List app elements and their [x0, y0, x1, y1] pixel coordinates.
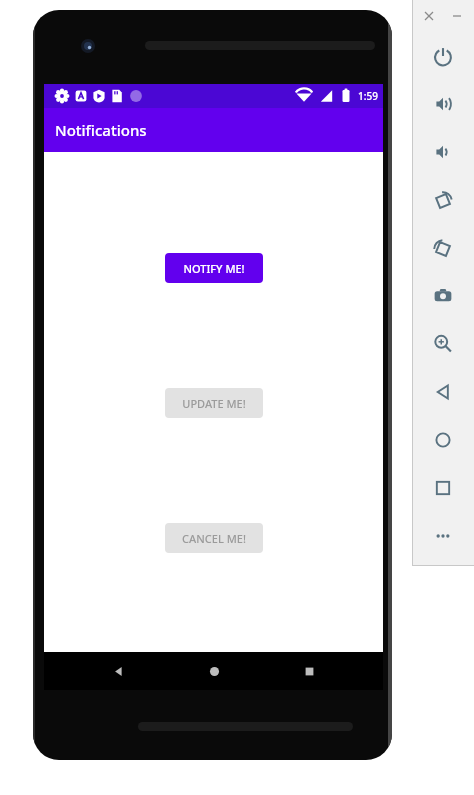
button[interactable]: Minimize	[447, 6, 467, 26]
button[interactable]: Rotate right	[412, 224, 474, 272]
staticText: Notifications	[55, 120, 147, 140]
button[interactable]: Back	[97, 652, 139, 690]
button[interactable]: Close	[419, 6, 439, 26]
button[interactable]: Volume down	[412, 128, 474, 176]
button[interactable]: CANCEL ME!	[165, 523, 263, 553]
button[interactable]: NOTIFY ME!	[165, 253, 263, 283]
staticText: 1:59	[358, 89, 378, 103]
button[interactable]: More	[412, 512, 474, 560]
button[interactable]: Home	[412, 416, 474, 464]
button[interactable]: Volume up	[412, 80, 474, 128]
staticText: UPDATE ME!	[182, 396, 246, 411]
button[interactable]: Recent apps	[288, 652, 330, 690]
button[interactable]: Back	[412, 368, 474, 416]
staticText: CANCEL ME!	[182, 531, 246, 546]
button[interactable]: Rotate left	[412, 176, 474, 224]
button[interactable]: Power	[412, 32, 474, 80]
button[interactable]: Take screenshot	[412, 272, 474, 320]
staticText: NOTIFY ME!	[183, 261, 245, 276]
button[interactable]: UPDATE ME!	[165, 388, 263, 418]
button[interactable]: Overview	[412, 464, 474, 512]
button[interactable]: Home	[193, 652, 235, 690]
button[interactable]: Zoom	[412, 320, 474, 368]
